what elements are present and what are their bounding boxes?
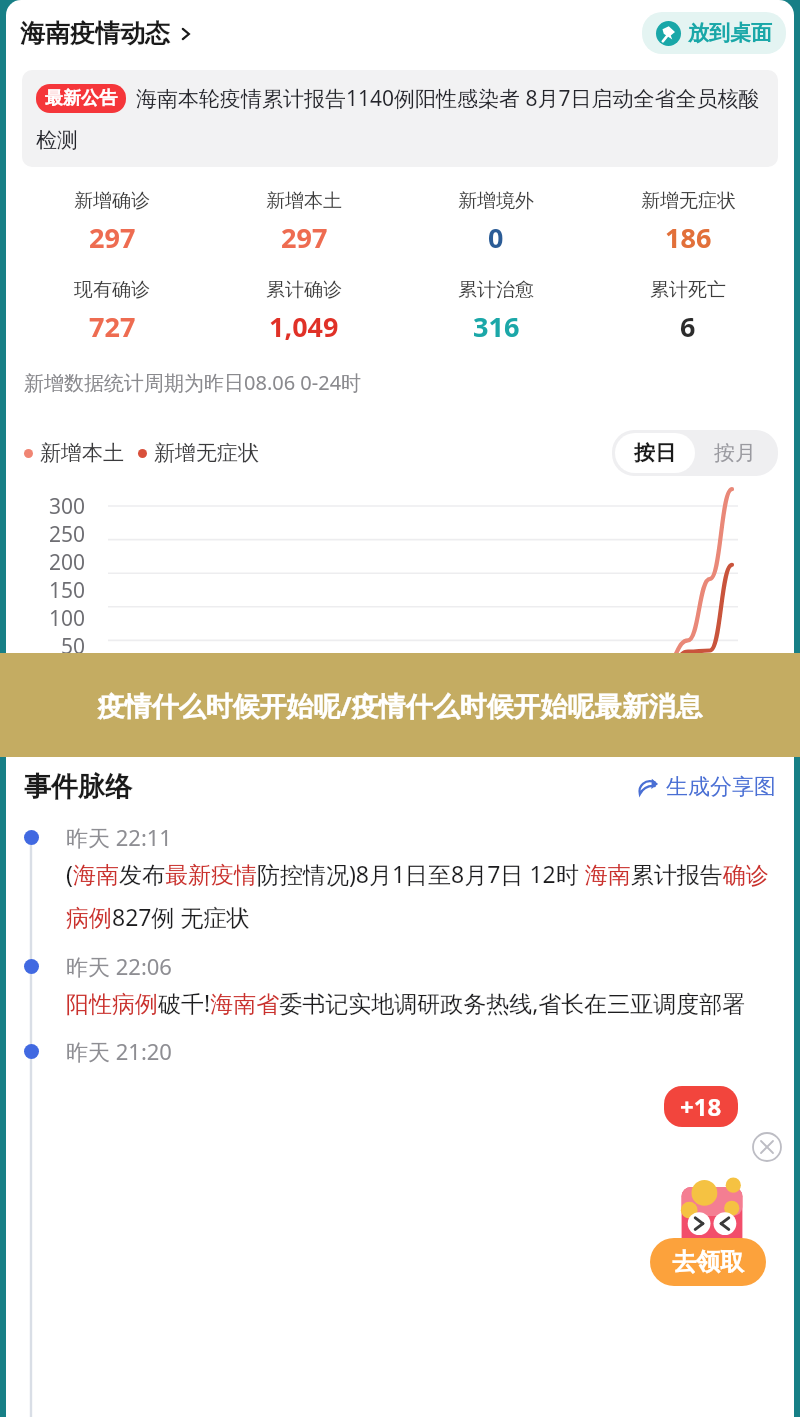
staticText: 现有确诊: [74, 278, 150, 302]
staticText: 阳性病例破千!海南省委书记实地调研政务热线,省长在三亚调度部署: [66, 987, 746, 1018]
staticText: 297: [89, 219, 136, 256]
button[interactable]: 去领取: [650, 1238, 766, 1286]
staticText: 新增无症状: [154, 440, 259, 466]
button[interactable]: 放到桌面: [642, 12, 786, 54]
staticText: 新增本土: [266, 189, 342, 213]
button[interactable]: 昨天 21:20: [6, 1036, 794, 1066]
staticText: +18: [680, 1090, 722, 1123]
staticText: 昨天 22:11: [66, 822, 172, 852]
staticText: (海南发布最新疫情防控情况)8月1日至8月7日 12时 海南累计报告确诊病例82…: [66, 858, 776, 933]
staticText: 新增无症状: [641, 189, 736, 213]
staticText: 6: [680, 308, 696, 345]
staticText: 昨天 22:06: [66, 951, 172, 981]
staticText: 8.1: [635, 706, 661, 731]
staticText: 7.30: [583, 706, 619, 731]
staticText: 按月: [714, 440, 756, 466]
staticText: 按日: [634, 440, 676, 466]
button[interactable]: 生成分享图: [636, 773, 776, 801]
button[interactable]: 昨天 22:11: [6, 822, 794, 933]
staticText: 300: [49, 492, 86, 520]
staticText: 事件脉络: [24, 770, 132, 804]
staticText: 新增本土: [40, 440, 124, 466]
staticText: 150: [49, 576, 86, 604]
staticText: 0: [488, 219, 504, 256]
staticText: 去领取: [672, 1247, 744, 1277]
staticText: 1,049: [269, 308, 339, 345]
staticText: 累计确诊: [266, 278, 342, 302]
button[interactable]: Close: [752, 1132, 782, 1162]
button[interactable]: Red packet promo: [674, 1166, 750, 1262]
staticText: 7.18: [300, 706, 336, 731]
staticText: 新增数据统计周期为昨日08.06 0-24时: [24, 369, 362, 396]
staticText: 7.16: [253, 706, 289, 731]
button[interactable]: +18: [664, 1086, 738, 1127]
staticText: 新增确诊: [74, 189, 150, 213]
staticText: 297: [281, 219, 328, 256]
staticText: 200: [49, 548, 86, 576]
staticText: 7.14: [206, 706, 242, 731]
staticText: 7.22: [394, 706, 430, 731]
staticText: 生成分享图: [666, 773, 776, 801]
staticText: 316: [473, 308, 520, 345]
staticText: 250: [49, 520, 86, 548]
staticText: 放到桌面: [688, 20, 772, 46]
staticText: 7.26: [489, 706, 525, 731]
staticText: 7.12: [159, 706, 195, 731]
staticText: 50: [61, 632, 86, 660]
staticText: 727: [89, 308, 136, 345]
button[interactable]: 昨天 22:06: [6, 951, 794, 1018]
button[interactable]: 最新公告 海南本轮疫情累计报告1140例阳性感染者 8月7日启动全省全员核酸检测: [22, 70, 778, 167]
staticText: 最新公告: [45, 87, 117, 110]
staticText: 最新公告 海南本轮疫情累计报告1140例阳性感染者 8月7日启动全省全员核酸检测: [36, 84, 764, 153]
staticText: 7.20: [347, 706, 383, 731]
staticText: 8.3: [682, 706, 708, 731]
button[interactable]: 海南疫情动态: [20, 18, 642, 49]
staticText: 7.28: [536, 706, 572, 731]
staticText: 100: [49, 604, 86, 632]
staticText: 新增境外: [458, 189, 534, 213]
staticText: 海南疫情动态: [20, 18, 170, 49]
staticText: 疫情什么时候开始呢/疫情什么时候开始呢最新消息: [44, 687, 756, 724]
staticText: 累计死亡: [650, 278, 726, 302]
staticText: 累计治愈: [458, 278, 534, 302]
staticText: 7.10: [112, 706, 148, 731]
staticText: 7.24: [442, 706, 478, 731]
staticText: 186: [665, 219, 712, 256]
button[interactable]: 按日: [615, 433, 695, 473]
button[interactable]: 按月: [695, 433, 775, 473]
staticText: 昨天 21:20: [66, 1036, 172, 1066]
